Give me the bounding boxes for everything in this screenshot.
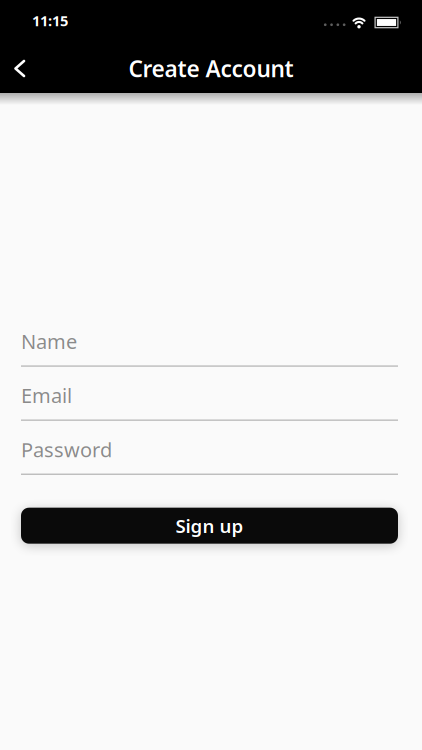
button[interactable]: Password — [21, 436, 398, 475]
button[interactable]: Back — [0, 47, 26, 89]
staticText: Name — [21, 328, 77, 355]
staticText: Sign up — [175, 513, 243, 538]
staticText: Password — [21, 436, 112, 463]
staticText: 11:15 — [32, 11, 68, 30]
button[interactable]: Sign up — [21, 508, 398, 544]
staticText: Email — [21, 382, 72, 409]
staticText: Create Account — [128, 53, 293, 83]
button[interactable]: Name — [21, 328, 398, 367]
button[interactable]: Email — [21, 382, 398, 421]
